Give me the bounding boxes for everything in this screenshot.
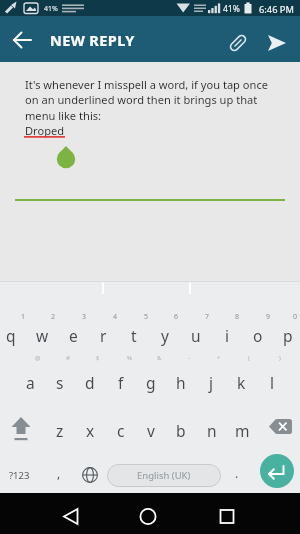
staticText: + <box>217 354 221 362</box>
button[interactable]: h <box>166 361 196 403</box>
staticText: 2 <box>51 312 56 322</box>
button[interactable] <box>222 27 254 59</box>
staticText: 8 <box>235 312 240 322</box>
button[interactable]: , <box>19 457 99 489</box>
staticText: r <box>100 325 107 346</box>
button[interactable] <box>263 413 299 443</box>
staticText: 1 <box>21 312 26 322</box>
staticText: e <box>69 325 78 346</box>
button[interactable]: English (UK) <box>107 464 221 487</box>
button[interactable]: x <box>75 409 105 451</box>
button[interactable]: k <box>226 361 256 403</box>
staticText: 9 <box>266 312 271 322</box>
button[interactable] <box>56 498 86 528</box>
staticText: # <box>66 354 70 362</box>
button[interactable]: c <box>106 409 136 451</box>
staticText: y <box>161 325 169 346</box>
button[interactable] <box>262 28 292 58</box>
button[interactable]: u <box>181 314 211 356</box>
staticText: ( <box>248 354 250 362</box>
staticText: , <box>57 465 61 481</box>
staticText: 41% <box>223 3 240 15</box>
staticText: p <box>283 325 293 346</box>
button[interactable] <box>79 464 101 486</box>
staticText: 7 <box>205 312 210 322</box>
button[interactable]: m <box>227 409 257 451</box>
button[interactable]: r <box>88 314 118 356</box>
staticText: 41% <box>44 4 58 14</box>
staticText: 6 <box>174 312 179 322</box>
staticText: f <box>118 372 124 393</box>
staticText: a <box>26 372 35 393</box>
staticText: menu like this: <box>25 108 102 123</box>
button[interactable]: b <box>166 409 196 451</box>
staticText: ?123 <box>9 469 30 482</box>
staticText: 3 <box>82 312 87 322</box>
staticText: 4 <box>113 312 118 322</box>
button[interactable]: o <box>243 314 273 356</box>
button[interactable] <box>6 24 38 54</box>
staticText: u <box>191 325 201 346</box>
staticText: s <box>56 372 64 393</box>
staticText: @ <box>35 354 41 362</box>
staticText: x <box>86 420 95 441</box>
staticText: English (UK) <box>137 469 191 482</box>
staticText: d <box>85 372 95 393</box>
button[interactable]: ?123 <box>0 459 59 491</box>
button[interactable] <box>133 498 163 528</box>
button[interactable]: a <box>15 361 45 403</box>
button[interactable]: v <box>136 409 166 451</box>
button[interactable]: e <box>58 314 88 356</box>
button[interactable]: n <box>197 409 227 451</box>
button[interactable]: z <box>45 409 75 451</box>
button[interactable]: l <box>257 361 287 403</box>
staticText: j <box>209 372 213 393</box>
staticText: 0 <box>293 312 298 322</box>
staticText: NEW REPLY <box>50 30 135 50</box>
button[interactable]: y <box>150 314 180 356</box>
staticText: g <box>146 372 156 393</box>
staticText: l <box>270 372 274 393</box>
staticText: % <box>127 354 132 362</box>
button[interactable] <box>4 413 40 447</box>
staticText: Droped <box>25 123 65 138</box>
staticText: 6:46 PM <box>259 3 294 16</box>
staticText: k <box>237 372 246 393</box>
button[interactable]: g <box>136 361 166 403</box>
staticText: n <box>207 420 217 441</box>
button[interactable]: . <box>197 457 277 489</box>
button[interactable] <box>260 454 294 488</box>
staticText: It's whenever I misspell a word, if you … <box>25 77 268 92</box>
staticText: c <box>117 420 125 441</box>
staticText: ) <box>279 354 281 362</box>
staticText: - <box>188 354 190 362</box>
button[interactable]: w <box>27 314 57 356</box>
button[interactable]: d <box>75 361 105 403</box>
staticText: i <box>225 325 229 346</box>
button[interactable]: i <box>212 314 242 356</box>
button[interactable]: q <box>0 314 26 356</box>
staticText: 5 <box>144 312 149 322</box>
staticText: b <box>176 420 186 441</box>
button[interactable]: t <box>119 314 149 356</box>
staticText: h <box>176 372 186 393</box>
button[interactable]: s <box>45 361 75 403</box>
staticText: z <box>56 420 64 441</box>
staticText: m <box>235 420 250 441</box>
button[interactable]: j <box>196 361 226 403</box>
button[interactable]: f <box>106 361 136 403</box>
staticText: on an underlined word then it brings up … <box>25 92 258 107</box>
staticText: o <box>253 325 263 346</box>
button[interactable] <box>212 498 242 528</box>
staticText: $ <box>96 354 100 362</box>
staticText: q <box>6 325 16 346</box>
button[interactable]: p <box>273 314 300 356</box>
staticText: t <box>131 325 137 346</box>
staticText: & <box>157 354 162 362</box>
staticText: w <box>36 325 49 346</box>
staticText: . <box>235 465 239 481</box>
staticText: v <box>147 420 155 441</box>
